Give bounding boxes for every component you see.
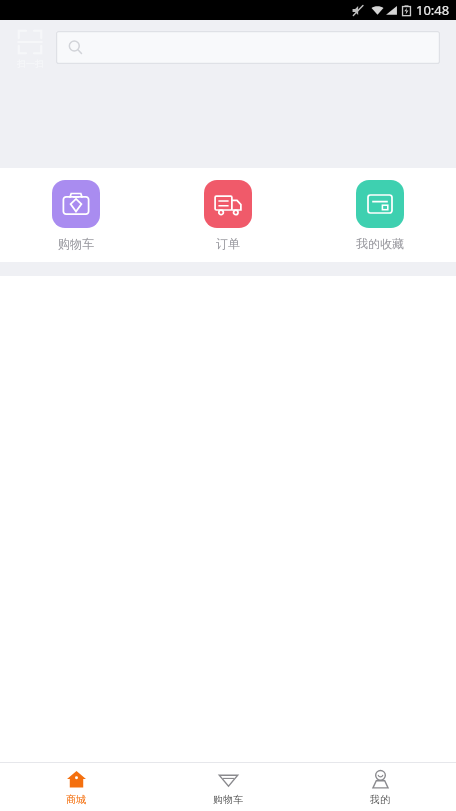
button[interactable]: 商城 (0, 763, 152, 811)
button[interactable] (56, 31, 440, 64)
staticText: 我的收藏 (356, 236, 404, 251)
staticText: 购物车 (58, 236, 94, 251)
staticText: 订单 (216, 236, 240, 251)
staticText: 我的 (370, 793, 390, 806)
staticText: 购物车 (213, 793, 243, 806)
button[interactable]: 我的收藏 (304, 168, 456, 262)
button[interactable]: 购物车 (152, 763, 304, 811)
button[interactable]: 我的 (304, 763, 456, 811)
button[interactable]: 订单 (152, 168, 304, 262)
staticText: 商城 (66, 793, 86, 806)
staticText: 10:48 (416, 1, 450, 19)
button[interactable]: 购物车 (0, 168, 152, 262)
